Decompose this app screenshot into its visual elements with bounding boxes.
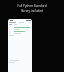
staticText: Full Python Standard (17, 4, 47, 8)
staticText: library included (21, 9, 43, 13)
